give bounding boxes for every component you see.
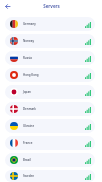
staticText: Denmark [23, 107, 37, 111]
staticText: Brazil [23, 158, 31, 162]
button[interactable]: Back [2, 1, 13, 12]
button[interactable]: Brazil [5, 153, 95, 167]
staticText: Ukraine [23, 124, 35, 128]
staticText: Norway [23, 39, 35, 43]
button[interactable]: France [5, 136, 95, 150]
button[interactable]: Hong Kong [5, 68, 95, 82]
staticText: Japan [23, 90, 31, 94]
staticText: France [23, 141, 33, 145]
button[interactable]: Ukraine [5, 119, 95, 133]
button[interactable]: Germany [5, 17, 95, 31]
button[interactable]: Norway [5, 34, 95, 48]
staticText: Sweden [23, 174, 35, 178]
button[interactable]: Sweden [5, 170, 95, 182]
staticText: Russia [23, 56, 33, 60]
staticText: Germany [23, 22, 36, 26]
button[interactable]: Russia [5, 51, 95, 65]
button[interactable]: Denmark [5, 102, 95, 116]
button[interactable]: Japan [5, 85, 95, 99]
staticText: Hong Kong [23, 73, 39, 77]
staticText: Servers [43, 3, 60, 9]
